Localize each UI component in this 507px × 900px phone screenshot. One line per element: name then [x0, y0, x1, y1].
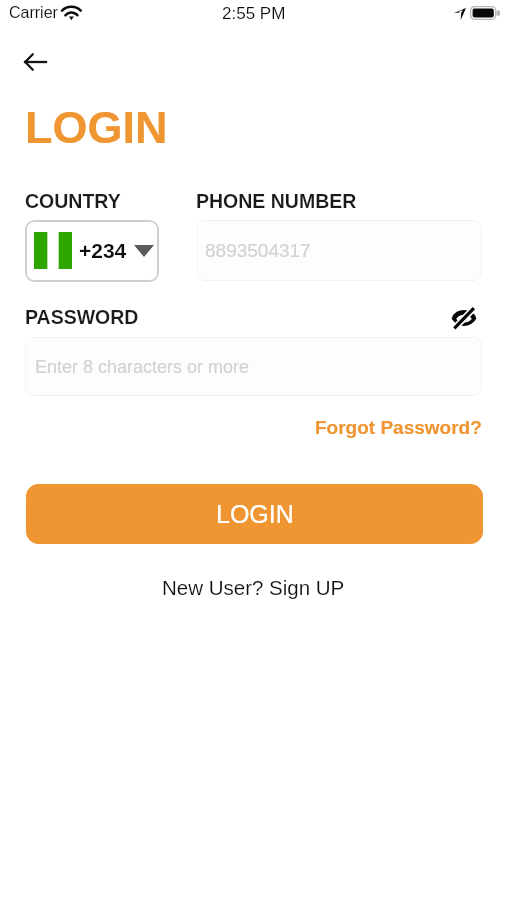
button[interactable]: LOGIN [26, 484, 483, 544]
staticText: 2:55 PM [222, 4, 286, 23]
staticText: COUNTRY [25, 190, 121, 212]
staticText: +234 [79, 239, 127, 262]
button[interactable]: 8893504317 [197, 220, 482, 281]
staticText: 8893504317 [205, 240, 311, 261]
button[interactable]: Forgot Password? [309, 412, 488, 443]
staticText: PASSWORD [25, 306, 139, 328]
button[interactable]: Show password [446, 300, 482, 336]
button[interactable]: New User? Sign UP [154, 571, 353, 604]
staticText: Carrier [9, 4, 58, 22]
staticText: PHONE NUMBER [196, 190, 357, 212]
button[interactable]: Back [9, 40, 61, 84]
staticText: LOGIN [216, 500, 294, 528]
staticText: Forgot Password? [315, 417, 482, 438]
staticText: LOGIN [25, 102, 168, 152]
button[interactable]: +234 [25, 220, 159, 282]
staticText: Enter 8 characters or more [35, 357, 250, 377]
button[interactable]: Enter 8 characters or more [25, 337, 482, 396]
